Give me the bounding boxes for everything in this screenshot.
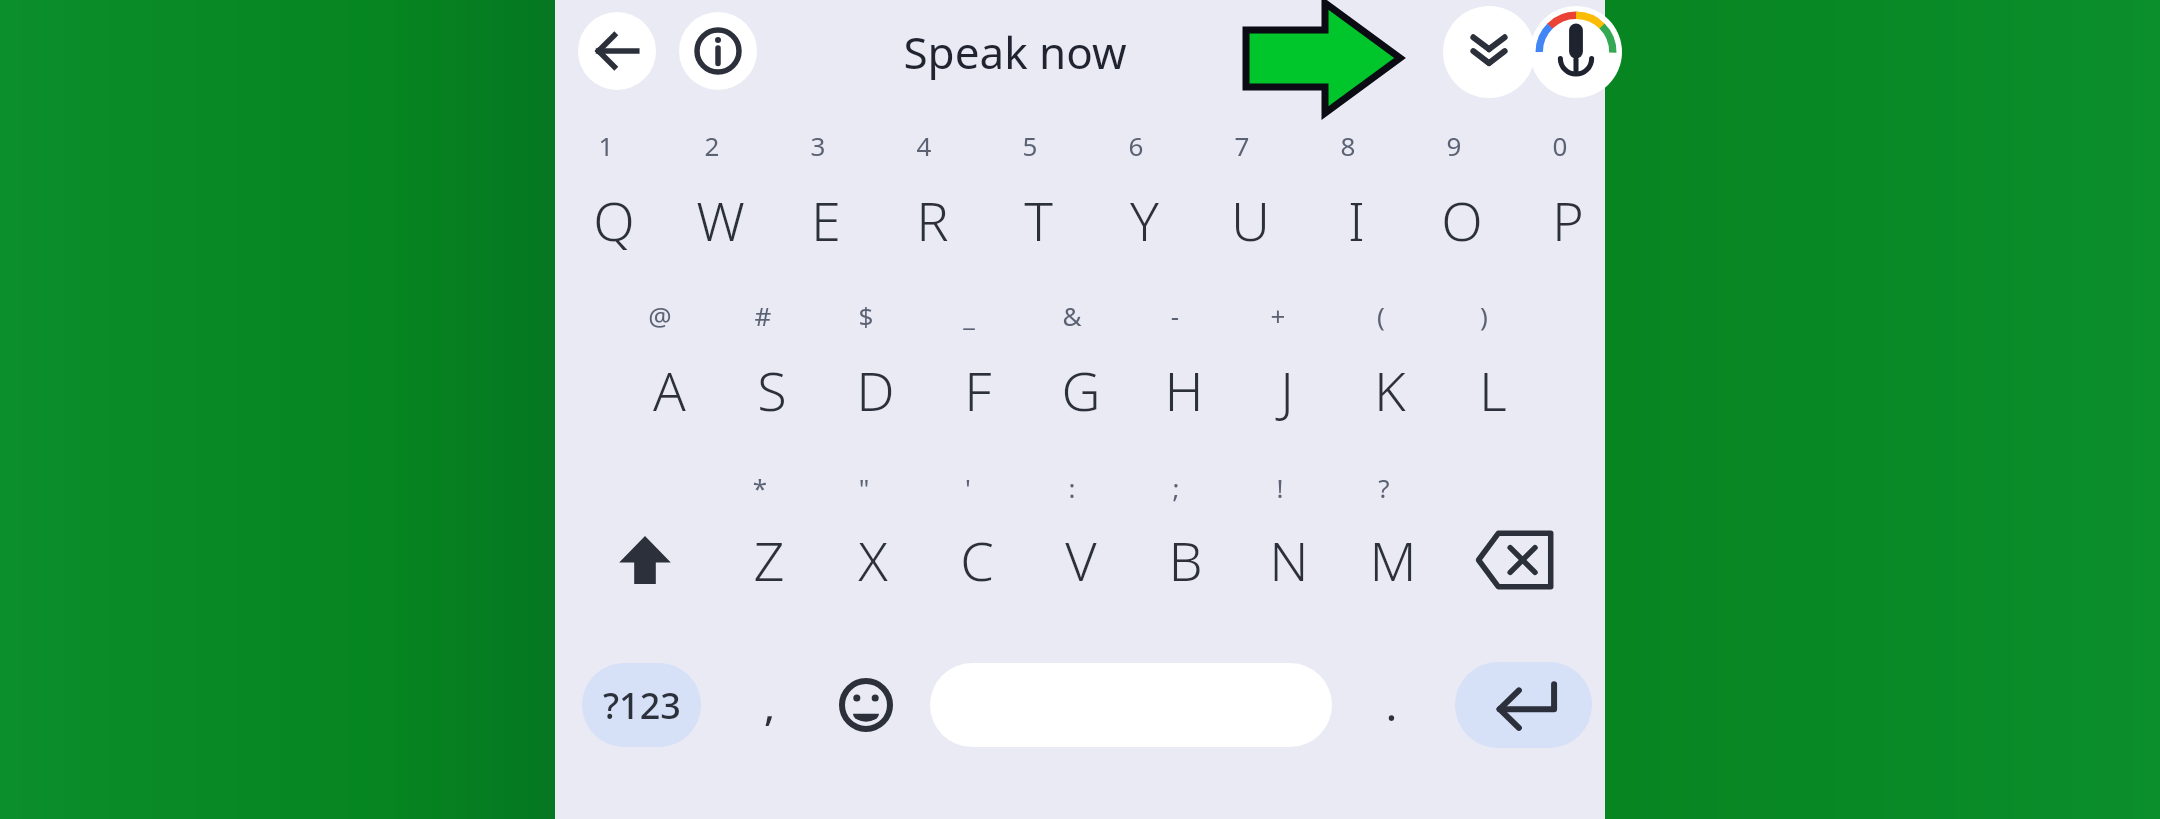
button[interactable]: Z [719,500,819,620]
staticText: ' [948,470,988,506]
staticText: ( [1361,298,1401,334]
button[interactable]: L [1443,330,1543,450]
button[interactable]: E [776,160,876,280]
staticText: L [1479,353,1507,427]
staticText: ? [1364,470,1404,506]
staticText: 1 [586,128,626,162]
staticText: A [653,353,686,427]
staticText: 6 [1116,128,1156,162]
staticText: J [1280,353,1294,427]
button[interactable]: Info [679,12,757,90]
staticText: I [1348,183,1365,257]
button[interactable]: X [823,500,923,620]
button[interactable]: Y [1094,160,1194,280]
button[interactable]: M [1343,500,1443,620]
button[interactable]: O [1412,160,1512,280]
button[interactable]: Space [930,663,1332,747]
button[interactable]: Back [578,12,656,90]
staticText: X [858,523,888,597]
staticText: Y [1130,183,1159,257]
button[interactable]: F [928,330,1028,450]
staticText: U [1231,183,1270,257]
button[interactable]: . [1345,663,1437,747]
button[interactable]: H [1134,330,1234,450]
button[interactable]: Shift [597,500,693,620]
button[interactable]: K [1340,330,1440,450]
button[interactable]: B [1135,500,1235,620]
button[interactable]: Microphone [1530,6,1622,98]
button[interactable]: D [825,330,925,450]
staticText: : [1052,470,1092,506]
button[interactable]: I [1306,160,1406,280]
staticText: ! [1260,470,1300,506]
staticText: 3 [798,128,838,162]
button[interactable]: G [1031,330,1131,450]
staticText: , [764,678,775,732]
staticText: # [743,298,783,334]
staticText: D [856,353,895,427]
staticText: . [1386,678,1397,732]
staticText: T [1024,183,1053,257]
staticText: E [811,183,841,257]
staticText: Z [753,523,785,597]
staticText: @ [640,298,680,334]
staticText: 2 [692,128,732,162]
staticText: H [1164,353,1204,427]
staticText: M [1369,523,1417,597]
button[interactable]: Emoji [823,663,909,747]
staticText: F [964,353,992,427]
button[interactable]: ?123 [582,663,701,747]
staticText: 9 [1434,128,1474,162]
staticText: _ [949,298,989,334]
staticText: V [1065,523,1097,597]
staticText: W [696,183,745,257]
button[interactable]: P [1518,160,1618,280]
staticText: N [1269,523,1309,597]
staticText: ?123 [603,681,681,730]
button[interactable]: Q [564,160,664,280]
staticText: 0 [1540,128,1580,162]
button[interactable]: R [882,160,982,280]
staticText: 7 [1222,128,1262,162]
staticText: G [1061,353,1101,427]
button[interactable]: A [619,330,719,450]
staticText: 4 [904,128,944,162]
staticText: Speak now [885,22,1145,80]
staticText: Q [593,183,635,257]
staticText: O [1441,183,1483,257]
button[interactable]: W [670,160,770,280]
staticText: - [1155,298,1195,334]
staticText: " [844,470,884,506]
staticText: + [1258,298,1298,334]
staticText: R [916,183,949,257]
button[interactable]: Enter [1455,662,1592,748]
button[interactable]: N [1239,500,1339,620]
staticText: C [960,523,994,597]
button[interactable]: V [1031,500,1131,620]
button[interactable]: C [927,500,1027,620]
button[interactable]: , [721,663,817,747]
staticText: P [1552,183,1584,257]
staticText: K [1374,353,1406,427]
button[interactable]: Backspace [1465,500,1565,620]
button[interactable]: T [988,160,1088,280]
button[interactable]: U [1200,160,1300,280]
staticText: & [1052,298,1092,334]
staticText: ; [1156,470,1196,506]
button[interactable]: J [1237,330,1337,450]
button[interactable]: S [722,330,822,450]
staticText: 8 [1328,128,1368,162]
staticText: B [1168,523,1203,597]
staticText: ) [1464,298,1504,334]
staticText: * [740,470,780,506]
staticText: S [757,353,787,427]
staticText: 5 [1010,128,1050,162]
button[interactable]: Collapse [1443,6,1535,98]
staticText: $ [846,298,886,334]
